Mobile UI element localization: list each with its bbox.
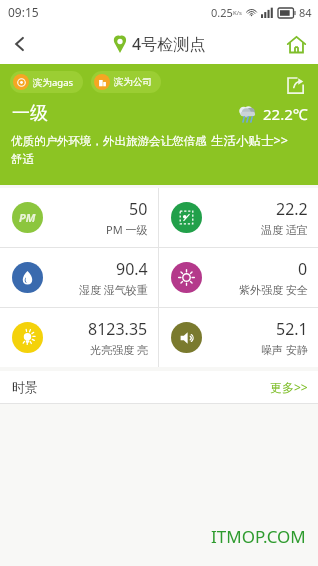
staticText: 紫外强度 安全 [239, 282, 308, 297]
staticText: 时景 [12, 379, 38, 395]
staticText: 0.25 [211, 5, 233, 20]
staticText: 52.1 [276, 318, 308, 340]
button[interactable]: Back [0, 24, 40, 64]
button[interactable]: PM [0, 188, 158, 247]
staticText: 50 [129, 198, 148, 220]
button[interactable]: Share [278, 68, 312, 102]
staticText: PM [19, 210, 36, 225]
button[interactable]: Home [274, 24, 318, 64]
staticText: 0 [298, 258, 308, 280]
button[interactable]: 90.4 [0, 248, 158, 307]
button[interactable]: 0 [159, 248, 318, 307]
staticText: 滨为agas [33, 76, 74, 89]
staticText: 09:15 [8, 4, 39, 20]
staticText: 22.2 [276, 198, 308, 220]
button[interactable]: 滨为公司 [91, 71, 161, 93]
staticText: PM 一级 [106, 222, 148, 237]
staticText: 生活小贴士>> [211, 132, 288, 149]
staticText: 更多>> [270, 379, 308, 395]
staticText: 90.4 [116, 258, 148, 280]
button[interactable]: 22.2 [159, 188, 318, 247]
staticText: 84 [299, 5, 312, 20]
staticText: 噪声 安静 [261, 342, 308, 357]
staticText: K/s [233, 9, 242, 17]
staticText: 光亮强度 亮 [90, 342, 148, 357]
staticText: ITMOP.COM [211, 525, 306, 548]
staticText: 优质的户外环境，外出旅游会让您倍感 [11, 134, 207, 148]
staticText: 22.2℃ [263, 104, 308, 124]
staticText: 8123.35 [88, 318, 148, 340]
staticText: 温度 适宜 [261, 222, 308, 237]
staticText: 舒适 [11, 152, 34, 166]
button[interactable]: 8123.35 [0, 308, 158, 367]
button[interactable]: 52.1 [159, 308, 318, 367]
staticText: 4号检测点 [132, 33, 206, 55]
staticText: 滨为公司 [114, 76, 152, 88]
button[interactable]: 时景 [0, 371, 318, 403]
button[interactable]: 生活小贴士>> [211, 132, 288, 149]
button[interactable]: 滨为agas [10, 71, 83, 93]
staticText: 湿度 湿气较重 [79, 282, 148, 297]
staticText: 一级 [12, 102, 48, 125]
